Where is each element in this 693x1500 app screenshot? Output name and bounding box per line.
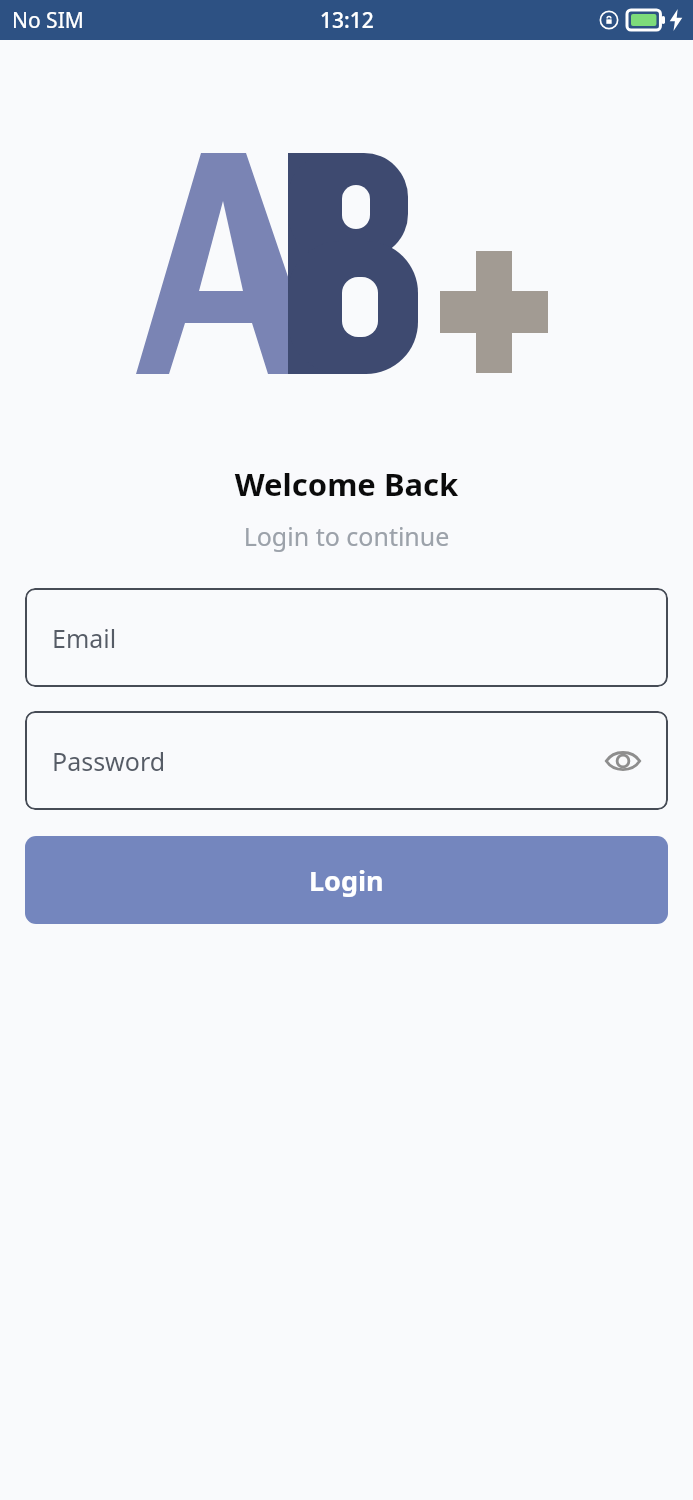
staticText: 13:12	[320, 6, 374, 35]
staticText: Welcome Back	[0, 463, 693, 505]
staticText: Email	[52, 621, 117, 655]
button[interactable]: Login	[25, 836, 668, 924]
staticText: Login to continue	[0, 519, 693, 553]
button[interactable]: Show password	[601, 739, 645, 783]
button[interactable]: Password	[25, 711, 668, 810]
staticText: Login	[309, 862, 384, 899]
staticText: Password	[52, 744, 166, 778]
staticText: No SIM	[12, 6, 84, 35]
button[interactable]: Email	[25, 588, 668, 687]
